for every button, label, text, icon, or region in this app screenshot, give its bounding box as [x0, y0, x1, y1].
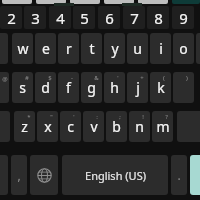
button[interactable]: 6: [98, 6, 120, 29]
button[interactable]: k: [150, 72, 171, 103]
staticText: ;: [119, 113, 121, 121]
staticText: 3: [31, 8, 40, 28]
button[interactable]: ,: [11, 155, 27, 195]
staticText: o: [179, 39, 188, 58]
staticText: English (US): [85, 168, 146, 183]
staticText: e: [42, 39, 50, 58]
button[interactable]: b: [106, 111, 127, 142]
button[interactable]: o: [173, 33, 194, 64]
button[interactable]: 7: [123, 6, 145, 29]
staticText: ?: [165, 113, 168, 121]
staticText: u: [133, 39, 142, 58]
staticText: ': [73, 113, 75, 121]
staticText: 7: [130, 8, 139, 28]
staticText: y: [111, 39, 119, 58]
staticText: b: [112, 117, 121, 136]
button[interactable]: m: [152, 111, 173, 142]
staticText: +: [140, 74, 144, 82]
staticText: *: [27, 113, 31, 121]
button[interactable]: z: [14, 111, 35, 142]
button[interactable]: i: [150, 33, 171, 64]
staticText: k: [157, 78, 165, 97]
button[interactable]: 5: [73, 6, 95, 29]
button[interactable]: j: [127, 72, 148, 103]
staticText: &: [94, 74, 99, 82]
staticText: g: [87, 78, 96, 97]
staticText: #: [25, 74, 29, 82]
button[interactable]: 8: [147, 6, 169, 29]
button[interactable]: Enter: [190, 155, 200, 195]
button[interactable]: r: [58, 33, 79, 64]
button[interactable]: c: [60, 111, 81, 142]
staticText: :: [96, 113, 98, 121]
button[interactable]: .: [171, 155, 187, 195]
button[interactable]: ): [173, 72, 194, 103]
button[interactable]: [196, 33, 200, 64]
staticText: ': [117, 74, 119, 82]
staticText: f: [66, 78, 71, 97]
staticText: s: [19, 78, 26, 97]
staticText: ,: [17, 167, 21, 183]
staticText: ): [186, 74, 188, 82]
staticText: r: [66, 39, 72, 58]
button[interactable]: v: [83, 111, 104, 142]
button[interactable]: y: [104, 33, 125, 64]
staticText: 6: [105, 8, 114, 28]
staticText: d: [41, 78, 50, 97]
button[interactable]: n: [129, 111, 150, 142]
staticText: 9: [179, 8, 188, 28]
button[interactable]: 4: [49, 6, 71, 29]
button[interactable]: English (US): [62, 155, 168, 195]
button[interactable]: f: [58, 72, 79, 103]
button[interactable]: Change keyboard: [30, 155, 58, 195]
staticText: (: [163, 74, 165, 82]
button[interactable]: 9: [172, 6, 194, 29]
staticText: v: [90, 117, 98, 136]
staticText: c: [67, 117, 74, 136]
button[interactable]: e: [35, 33, 56, 64]
staticText: .: [177, 167, 181, 183]
button[interactable]: t: [81, 33, 102, 64]
button[interactable]: g: [81, 72, 102, 103]
button[interactable]: x: [37, 111, 58, 142]
staticText: ": [50, 113, 53, 121]
button[interactable]: u: [127, 33, 148, 64]
staticText: 8: [154, 8, 163, 28]
staticText: 5: [80, 8, 89, 28]
staticText: n: [135, 117, 144, 136]
button[interactable]: w: [12, 33, 33, 64]
staticText: j: [136, 78, 140, 97]
staticText: w: [17, 39, 29, 58]
staticText: -: [71, 74, 73, 82]
staticText: 2: [7, 8, 16, 28]
button[interactable]: 3: [24, 6, 46, 29]
staticText: t: [89, 39, 95, 58]
staticText: $: [48, 74, 52, 82]
staticText: m: [156, 117, 170, 136]
button[interactable]: s: [12, 72, 33, 103]
staticText: h: [110, 78, 119, 97]
button[interactable]: @: [0, 72, 9, 103]
staticText: @: [2, 75, 8, 83]
staticText: z: [21, 117, 28, 136]
staticText: x: [44, 117, 52, 136]
staticText: i: [159, 39, 163, 58]
button[interactable]: h: [104, 72, 125, 103]
staticText: !: [142, 113, 144, 121]
staticText: 4: [56, 8, 65, 28]
button[interactable]: 2: [0, 6, 22, 29]
button[interactable]: d: [35, 72, 56, 103]
